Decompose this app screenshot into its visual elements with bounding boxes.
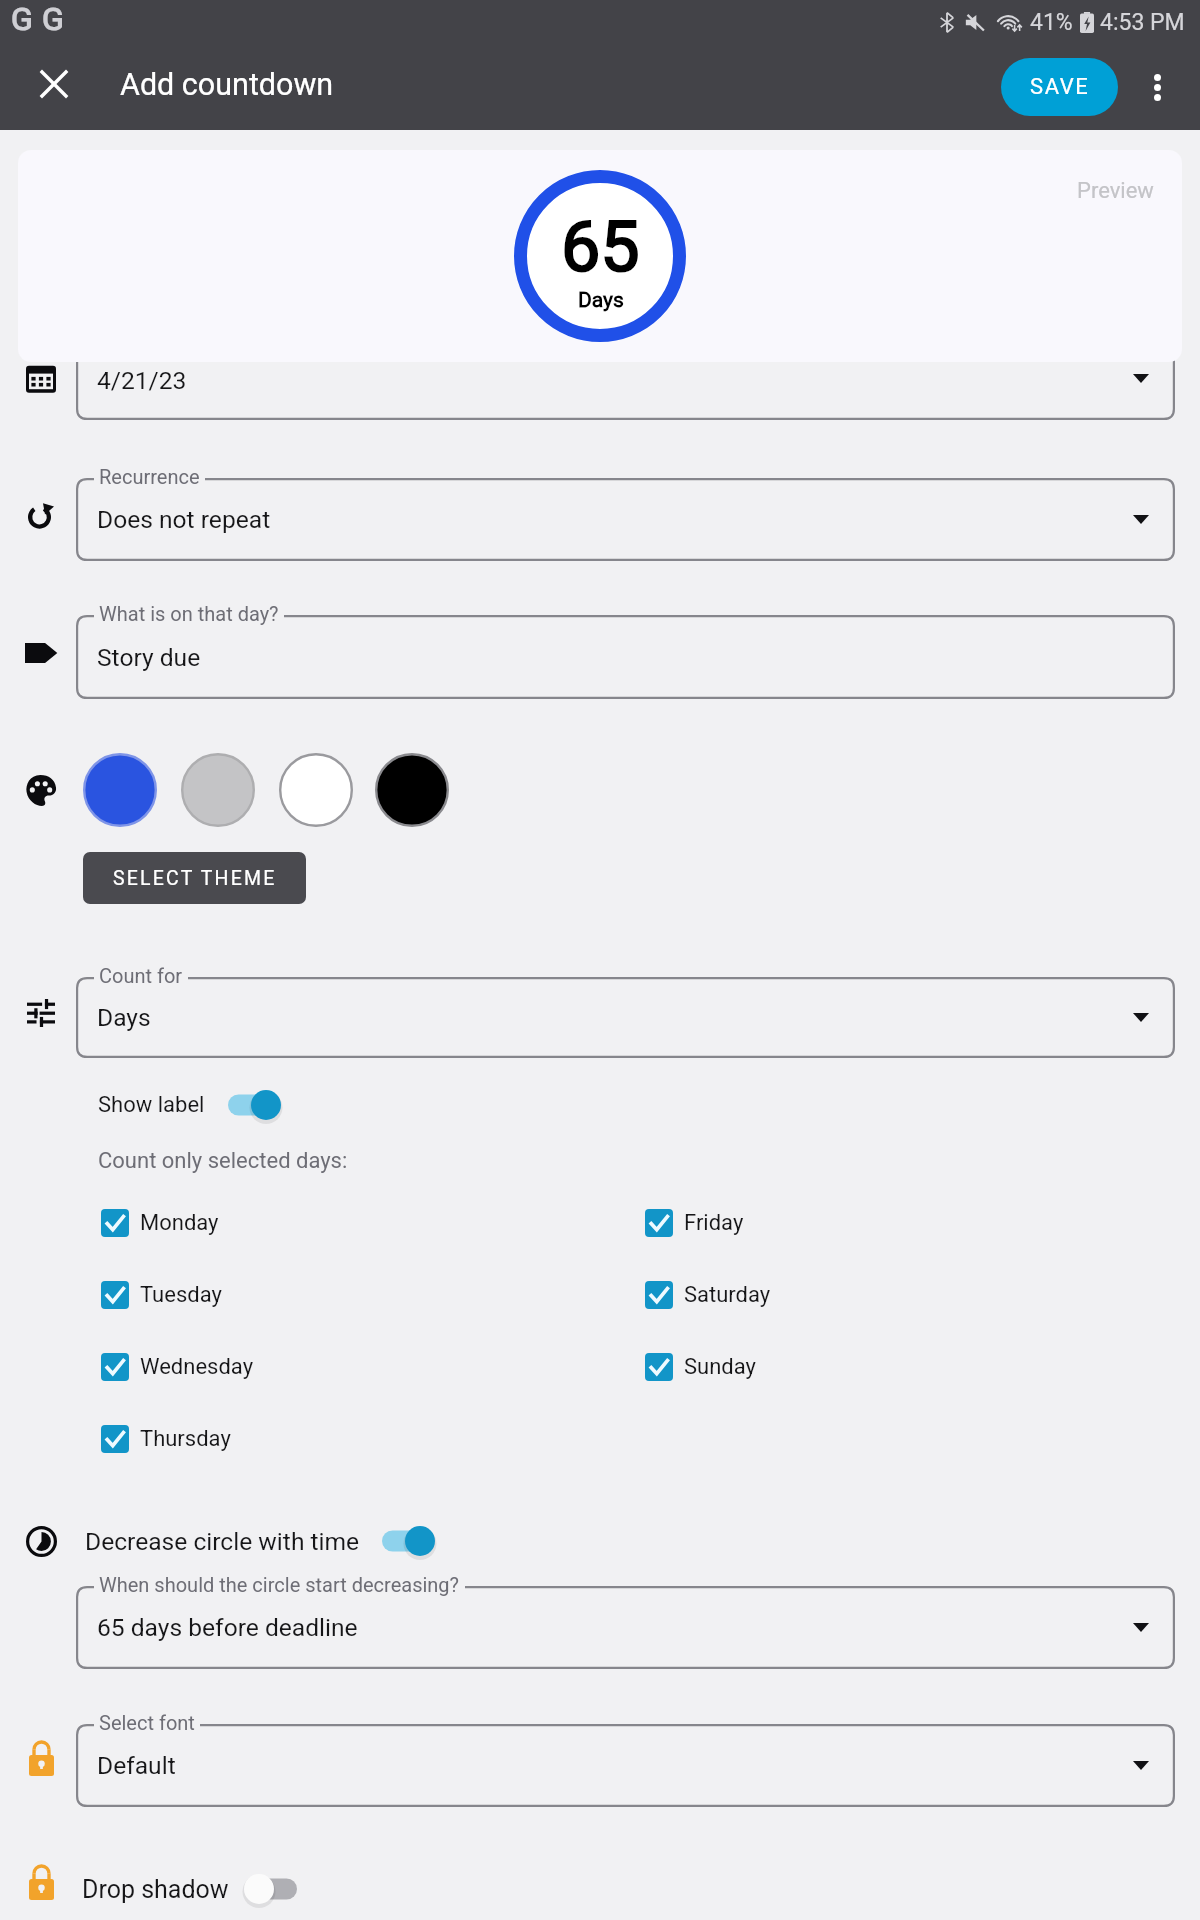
staticText: G: [11, 0, 33, 38]
staticText: Sunday: [684, 1354, 756, 1380]
button[interactable]: Wednesday: [91, 1341, 264, 1393]
staticText: Count only selected days:: [98, 1148, 348, 1174]
button[interactable]: Saturday: [635, 1269, 781, 1321]
button[interactable]: Show label: [84, 1077, 280, 1133]
button[interactable]: SELECT THEME: [83, 852, 306, 904]
staticText: 4/21/23: [97, 366, 187, 395]
staticText: 65 days before deadline: [97, 1613, 358, 1642]
button[interactable]: Decrease circle with time: [71, 1513, 434, 1569]
button[interactable]: Tuesday: [91, 1269, 232, 1321]
button[interactable]: More options: [1128, 58, 1186, 116]
staticText: Add countdown: [120, 67, 334, 103]
staticText: Days: [578, 288, 624, 313]
button[interactable]: Sunday: [635, 1341, 766, 1393]
staticText: Preview: [1077, 178, 1154, 204]
staticText: Select font: [99, 1711, 195, 1734]
staticText: SELECT THEME: [113, 867, 277, 890]
button[interactable]: Select font: [76, 1724, 1175, 1807]
staticText: 4:53 PM: [1100, 9, 1185, 36]
staticText: 41%: [1030, 9, 1073, 36]
button[interactable]: Theme colour: [82, 752, 158, 828]
staticText: Friday: [684, 1210, 744, 1236]
button[interactable]: SAVE: [1001, 58, 1118, 116]
button[interactable]: Monday: [91, 1197, 229, 1249]
staticText: Does not repeat: [97, 505, 271, 534]
button[interactable]: Theme colour: [180, 752, 256, 828]
staticText: Count for: [99, 964, 183, 987]
staticText: Saturday: [684, 1282, 771, 1308]
staticText: When should the circle start decreasing?: [99, 1573, 460, 1596]
staticText: Tuesday: [140, 1282, 222, 1308]
staticText: G: [42, 0, 64, 38]
staticText: Thursday: [140, 1426, 231, 1452]
staticText: Default: [97, 1751, 176, 1780]
button[interactable]: Thursday: [91, 1413, 241, 1465]
staticText: 65: [561, 206, 640, 288]
button[interactable]: Close: [14, 44, 94, 124]
staticText: Wednesday: [140, 1354, 254, 1380]
staticText: Decrease circle with time: [85, 1527, 360, 1556]
button[interactable]: When should the circle start decreasing?: [76, 1586, 1175, 1669]
staticText: Days: [97, 1003, 151, 1032]
staticText: Story due: [97, 643, 201, 672]
button[interactable]: Theme colour: [278, 752, 354, 828]
staticText: SAVE: [1030, 74, 1090, 100]
staticText: What is on that day?: [99, 602, 279, 625]
button[interactable]: What is on that day?: [76, 615, 1175, 699]
button[interactable]: Drop shadow: [68, 1861, 297, 1917]
staticText: Show label: [98, 1092, 205, 1118]
staticText: Drop shadow: [82, 1875, 229, 1904]
button[interactable]: Theme colour: [374, 752, 450, 828]
button[interactable]: Friday: [635, 1197, 754, 1249]
staticText: Monday: [140, 1210, 219, 1236]
button[interactable]: Count for: [76, 977, 1175, 1058]
button[interactable]: Recurrence: [76, 478, 1175, 561]
button[interactable]: 4/21/23: [76, 337, 1175, 420]
staticText: Recurrence: [99, 465, 200, 488]
